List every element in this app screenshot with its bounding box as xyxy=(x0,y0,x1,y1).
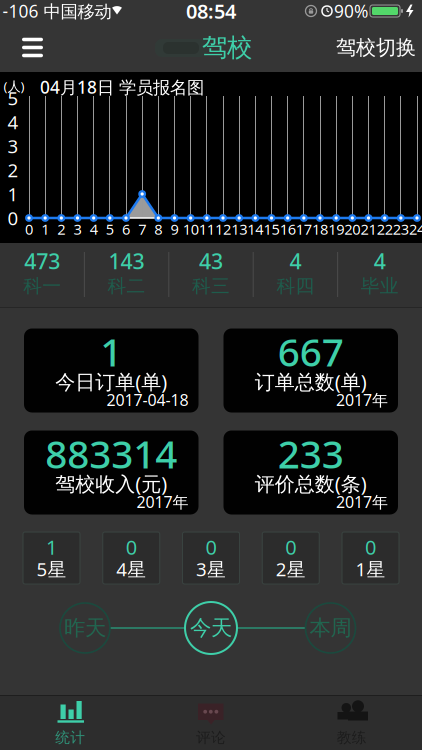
staticText: 6 xyxy=(122,219,130,239)
staticText: 科二 xyxy=(108,274,146,297)
staticText: 8 xyxy=(154,219,162,239)
staticText: 4 xyxy=(90,219,98,239)
staticText: 21 xyxy=(360,219,376,239)
staticText: 2 xyxy=(57,219,65,239)
staticText: 143 xyxy=(109,247,145,275)
staticText: 2017年 xyxy=(336,389,388,410)
staticText: 9 xyxy=(170,219,178,239)
button[interactable]: 昨天 xyxy=(60,603,110,653)
button[interactable]: 今天 xyxy=(185,602,237,654)
button[interactable]: 菜单 xyxy=(12,27,52,67)
staticText: 今日订单(单) xyxy=(55,368,167,395)
button[interactable]: 评论 xyxy=(141,695,281,750)
staticText: (人) xyxy=(3,77,24,95)
staticText: 今天 xyxy=(190,615,232,641)
staticText: 15 xyxy=(263,219,279,239)
staticText: 12 xyxy=(215,219,231,239)
staticText: 2017-04-18 xyxy=(106,389,188,410)
staticText: 驾校收入(元) xyxy=(55,470,167,497)
staticText: 2 xyxy=(7,158,18,182)
staticText: 订单总数(单) xyxy=(255,368,367,395)
staticText: 10 xyxy=(183,219,199,239)
staticText: 24 xyxy=(409,219,422,239)
staticText: 1 xyxy=(100,326,122,377)
staticText: 0 xyxy=(7,206,18,230)
staticText: 13 xyxy=(231,219,247,239)
staticText: 43 xyxy=(199,247,223,275)
staticText: 08:54 xyxy=(186,0,236,24)
staticText: 科四 xyxy=(276,274,314,297)
staticText: 233 xyxy=(278,428,344,479)
staticText: 毕业 xyxy=(361,274,399,297)
staticText: 3星 xyxy=(196,557,226,581)
staticText: 1 xyxy=(41,219,49,239)
staticText: 22 xyxy=(377,219,393,239)
staticText: 4 xyxy=(7,110,18,134)
staticText: 昨天 xyxy=(64,615,106,641)
button[interactable]: 教练 xyxy=(281,695,422,750)
staticText: 1 xyxy=(7,182,18,206)
staticText: 667 xyxy=(278,326,344,377)
staticText: 本周 xyxy=(309,615,351,641)
staticText: 19 xyxy=(328,219,344,239)
staticText: 11 xyxy=(199,219,215,239)
staticText: 4 xyxy=(289,247,301,275)
staticText: 5星 xyxy=(36,557,66,581)
staticText: 评论 xyxy=(196,728,226,746)
staticText: 2017年 xyxy=(336,491,388,512)
staticText: 3 xyxy=(7,134,18,158)
staticText: 驾校 xyxy=(202,32,252,63)
staticText: 驾校切换 xyxy=(336,35,416,60)
staticText: 0 xyxy=(25,219,33,239)
staticText: 14 xyxy=(247,219,263,239)
staticText: 17 xyxy=(296,219,312,239)
staticText: 统计 xyxy=(55,728,85,746)
staticText: 3 xyxy=(73,219,81,239)
staticText: 2星 xyxy=(276,557,306,581)
staticText: 评价总数(条) xyxy=(255,470,367,497)
staticText: 科一 xyxy=(23,274,61,297)
staticText: 4 xyxy=(374,247,386,275)
staticText: 0 xyxy=(285,534,296,560)
staticText: 0 xyxy=(365,534,376,560)
staticText: 90% xyxy=(334,0,368,22)
staticText: 科三 xyxy=(192,274,230,297)
staticText: 1 xyxy=(46,534,57,560)
staticText: 教练 xyxy=(337,728,367,746)
staticText: 883314 xyxy=(45,428,177,479)
staticText: 5 xyxy=(7,86,18,110)
button[interactable]: 统计 xyxy=(0,695,141,750)
staticText: -106 中国移动 xyxy=(2,0,111,22)
staticText: 16 xyxy=(280,219,296,239)
staticText: 0 xyxy=(205,534,216,560)
staticText: 1星 xyxy=(355,557,385,581)
staticText: 7 xyxy=(138,219,146,239)
staticText: 0 xyxy=(126,534,137,560)
staticText: 18 xyxy=(312,219,328,239)
staticText: 23 xyxy=(393,219,409,239)
button[interactable]: 驾校切换 xyxy=(336,27,416,67)
staticText: 5 xyxy=(106,219,114,239)
staticText: 2017年 xyxy=(136,491,188,512)
staticText: 20 xyxy=(344,219,360,239)
button[interactable]: 本周 xyxy=(305,603,355,653)
staticText: 473 xyxy=(24,247,60,275)
staticText: 04月18日 学员报名图 xyxy=(40,75,204,98)
staticText: 4星 xyxy=(116,557,146,581)
